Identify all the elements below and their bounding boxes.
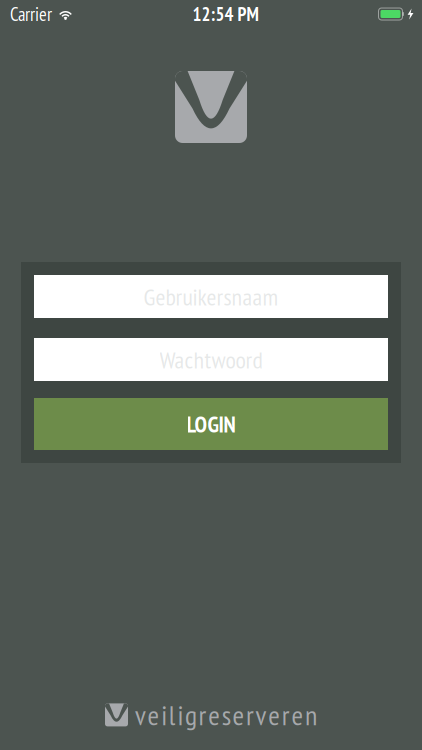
button[interactable]: LOGIN — [34, 398, 388, 450]
staticText: Wachtwoord — [159, 344, 262, 375]
button[interactable]: Wachtwoord — [34, 338, 388, 381]
staticText: Carrier — [10, 2, 52, 26]
staticText: LOGIN — [186, 409, 235, 439]
staticText: veiligreserveren — [135, 697, 317, 733]
button[interactable]: Gebruikersnaam — [34, 275, 388, 318]
staticText: 12:54 PM — [192, 2, 258, 26]
staticText: Gebruikersnaam — [143, 281, 278, 312]
